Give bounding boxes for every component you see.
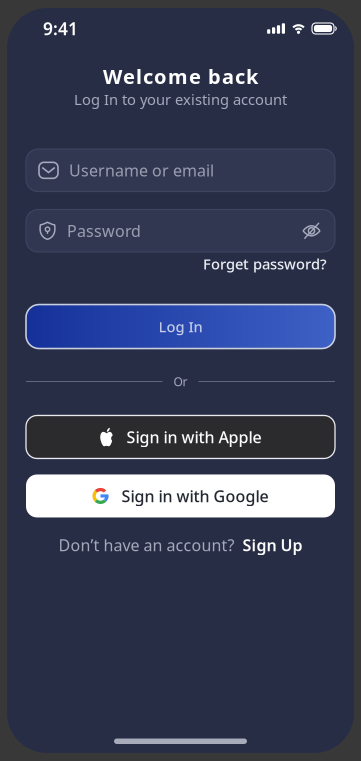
staticText: Username or email: [69, 160, 214, 181]
staticText: Log In to your existing account: [74, 90, 287, 109]
staticText: Or: [173, 373, 187, 389]
button[interactable]: Sign in with Google: [26, 474, 335, 517]
staticText: Sign in with Google: [121, 485, 268, 506]
staticText: Forget password?: [203, 254, 327, 274]
button[interactable]: Log In: [26, 304, 335, 348]
staticText: Sign in with Apple: [126, 426, 261, 447]
staticText: Don’t have an account?: [58, 534, 234, 556]
button[interactable]: Password: [26, 210, 335, 252]
staticText: 9:41: [43, 17, 78, 40]
button[interactable]: Forget password?: [203, 254, 327, 274]
staticText: Sign Up: [242, 534, 302, 556]
button[interactable]: Sign Up: [242, 534, 302, 556]
button[interactable]: Sign in with Apple: [26, 415, 335, 458]
staticText: Welcome back: [103, 63, 258, 90]
staticText: Password: [67, 220, 141, 241]
staticText: Log In: [158, 317, 202, 336]
button[interactable]: Username or email: [26, 149, 335, 192]
